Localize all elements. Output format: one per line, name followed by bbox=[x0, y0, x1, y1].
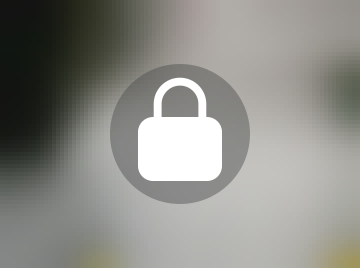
button[interactable]: Locked bbox=[110, 64, 250, 204]
